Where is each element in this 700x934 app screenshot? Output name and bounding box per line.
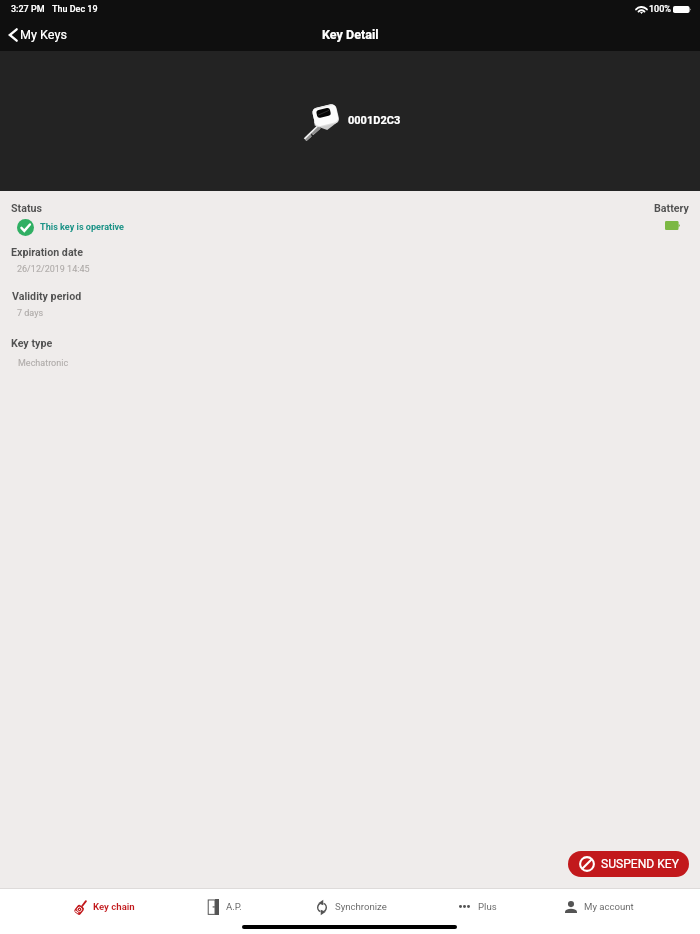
button[interactable]: My account [565,901,577,913]
staticText: Expiration date [11,246,83,259]
button[interactable]: Key chain [93,901,135,912]
button[interactable]: Synchronize [335,901,387,912]
staticText: 26/12/2019 14:45 [17,264,90,275]
staticText: My Keys [20,27,67,42]
button[interactable]: SUSPEND KEY [568,851,689,877]
staticText: Thu Dec 19 [52,4,98,15]
staticText: Mechatronic [18,358,69,369]
other: Back [8,28,18,42]
staticText: 3:27 PM [11,4,45,15]
button[interactable]: A.P. [226,901,242,912]
button[interactable]: Key chain [72,899,89,916]
staticText: Battery [654,202,689,215]
staticText: 7 days [17,308,44,319]
staticText: Key Detail [322,27,379,42]
button[interactable]: My account [584,901,634,912]
staticText: 0001D2C3 [348,114,401,127]
staticText: 100% [649,4,671,15]
button[interactable]: Back [8,27,67,42]
staticText: SUSPEND KEY [601,857,679,871]
button[interactable]: A.P. [208,899,219,915]
button[interactable]: Plus [459,903,470,910]
staticText: Key type [11,337,53,350]
button[interactable]: Plus [478,901,497,912]
button[interactable]: Synchronize [316,900,328,915]
staticText: Validity period [12,290,82,303]
staticText: Status [11,202,43,215]
staticText: This key is operative [40,222,125,233]
